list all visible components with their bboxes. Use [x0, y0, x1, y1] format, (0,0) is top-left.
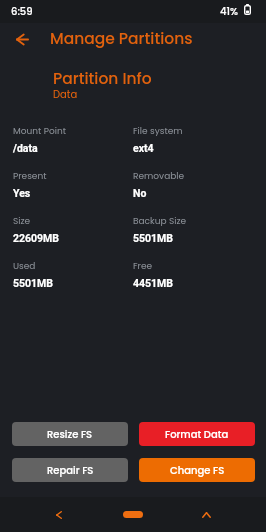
staticText: 22609MB [13, 232, 60, 244]
staticText: Change FS [170, 463, 225, 477]
staticText: Repair FS [47, 463, 94, 477]
staticText: Data [53, 87, 78, 101]
staticText: 5501MB [13, 277, 53, 289]
staticText: 6:59 [11, 4, 33, 18]
staticText: /data [13, 142, 38, 154]
staticText: 41% [220, 4, 238, 18]
staticText: Mount Point [13, 125, 66, 138]
staticText: 4451MB [133, 277, 173, 289]
button[interactable]: Home [116, 502, 150, 526]
button[interactable]: Back [45, 501, 73, 529]
staticText: Size [13, 215, 31, 228]
staticText: No [133, 187, 147, 199]
staticText: ext4 [133, 142, 154, 154]
staticText: File system [133, 125, 183, 138]
button[interactable]: Resize FS [12, 422, 128, 446]
button[interactable]: Repair FS [12, 458, 128, 482]
button[interactable]: Hide keyboard [192, 501, 220, 529]
staticText: 5501MB [133, 232, 173, 244]
staticText: Present [13, 170, 47, 183]
staticText: Format Data [165, 427, 229, 441]
button[interactable]: Change FS [139, 458, 255, 482]
staticText: Free [133, 260, 153, 273]
staticText: Manage Partitions [50, 28, 193, 50]
staticText: Resize FS [47, 427, 93, 441]
staticText: Removable [133, 170, 185, 183]
button[interactable]: Back [8, 26, 36, 54]
staticText: Backup Size [133, 215, 187, 228]
staticText: Used [13, 260, 36, 273]
staticText: Partition Info [53, 68, 152, 90]
staticText: Yes [13, 187, 31, 199]
button[interactable]: Format Data [139, 422, 255, 446]
